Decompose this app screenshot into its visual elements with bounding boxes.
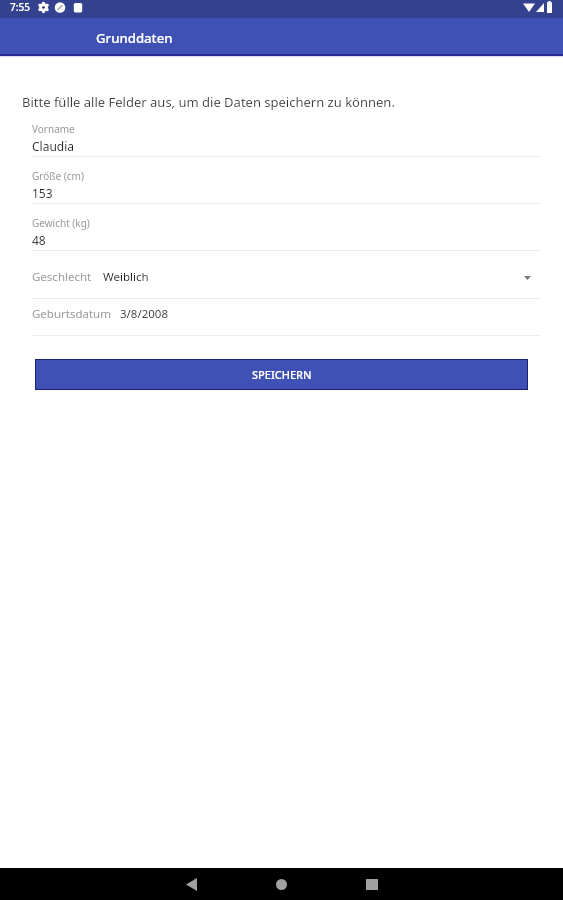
staticText: 7:55 [10, 0, 30, 14]
button[interactable]: Back [161, 868, 221, 900]
button[interactable]: SPEICHERN [36, 360, 527, 389]
button[interactable]: Recent apps [342, 868, 402, 900]
staticText: Vorname [32, 122, 75, 136]
staticText: Bitte fülle alle Felder aus, um die Date… [22, 93, 395, 111]
button[interactable]: Geburtsdatum [32, 300, 541, 328]
staticText: Grunddaten [96, 29, 173, 47]
staticText: Gewicht (kg) [32, 216, 90, 230]
staticText: Geschlecht [32, 269, 92, 285]
staticText: 153 [32, 185, 53, 201]
staticText: SPEICHERN [252, 367, 312, 382]
staticText: Größe (cm) [32, 169, 84, 183]
staticText: Claudia [32, 138, 75, 154]
button[interactable]: Gewicht (kg) [32, 211, 541, 251]
staticText: Geburtsdatum [32, 306, 111, 322]
button[interactable]: Vorname [32, 117, 541, 157]
button[interactable]: Home [251, 868, 311, 900]
staticText: Weiblich [103, 269, 149, 285]
staticText: 3/8/2008 [120, 306, 169, 322]
button[interactable]: Geschlecht [32, 262, 541, 290]
button[interactable]: Größe (cm) [32, 164, 541, 204]
staticText: 48 [32, 232, 46, 248]
